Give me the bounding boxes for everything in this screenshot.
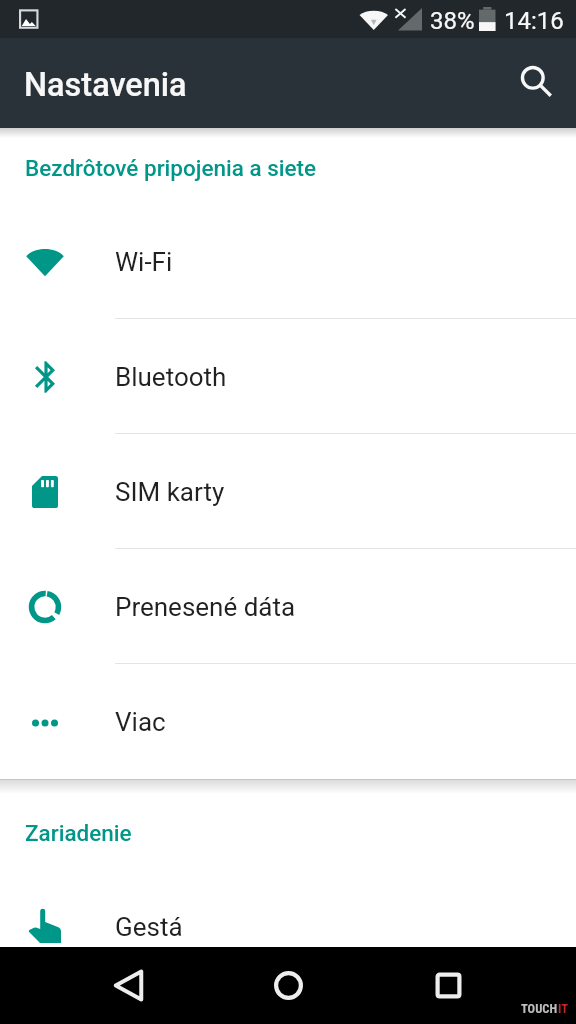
button[interactable]: Back [92,949,164,1021]
button[interactable]: Wi-Fi [0,204,576,319]
button[interactable]: Home [252,949,324,1021]
staticText: Viac [115,707,166,737]
staticText: Zariadenie [25,820,132,846]
staticText: 14:16 [504,7,564,35]
button[interactable]: SIM karty [0,434,576,549]
staticText: Nastavenia [24,66,187,104]
button[interactable]: Recents [412,949,484,1021]
staticText: Gestá [115,912,183,942]
staticText: 38% [430,7,475,35]
staticText: SIM karty [115,477,225,507]
button[interactable]: Prenesené dáta [0,549,576,664]
staticText: Prenesené dáta [115,592,296,622]
staticText: Bezdrôtové pripojenia a siete [25,155,317,181]
button[interactable]: Search [509,54,565,110]
staticText: TOUCH [521,1001,558,1016]
button[interactable]: Gestá [0,869,576,984]
staticText: IT [558,1001,568,1016]
button[interactable]: Viac [0,664,576,779]
staticText: Bluetooth [115,362,227,392]
staticText: Wi-Fi [115,247,173,277]
button[interactable]: Bluetooth [0,319,576,434]
